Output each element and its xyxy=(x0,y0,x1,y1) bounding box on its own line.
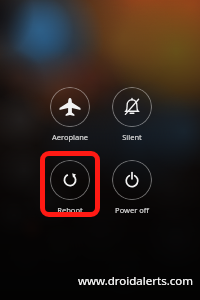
button[interactable]: Silent xyxy=(102,87,162,127)
staticText: Power off xyxy=(102,205,162,215)
staticText: Reboot xyxy=(40,205,100,215)
staticText: Aeroplane xyxy=(40,132,100,142)
button[interactable]: Aeroplane mode xyxy=(40,87,100,127)
staticText: www.droidalerts.com xyxy=(78,273,193,289)
button[interactable]: Reboot xyxy=(40,160,100,200)
button[interactable]: Power off xyxy=(102,160,162,200)
staticText: Silent xyxy=(102,132,162,142)
